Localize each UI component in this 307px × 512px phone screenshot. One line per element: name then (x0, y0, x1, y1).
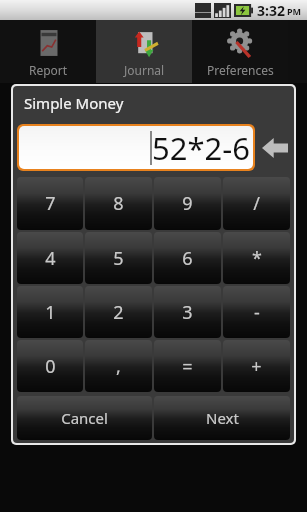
staticText: 9 (182, 191, 193, 216)
button[interactable]: 9 (154, 177, 221, 230)
staticText: Preferences (207, 62, 274, 78)
staticText: 8 (113, 191, 124, 216)
staticText: 7 (45, 191, 56, 216)
staticText: 0 (45, 354, 56, 379)
staticText: Next (206, 408, 239, 428)
staticText: 2 (113, 300, 124, 325)
button[interactable]: Report (0, 20, 96, 83)
button[interactable]: 8 (85, 177, 152, 230)
button[interactable]: 7 (17, 177, 83, 230)
staticText: Journal (124, 62, 165, 78)
button[interactable]: 6 (154, 232, 221, 284)
button[interactable]: Journal (96, 20, 192, 83)
button[interactable]: Preferences (192, 20, 288, 83)
staticText: 1 (45, 300, 56, 325)
staticText: 4 (45, 246, 56, 271)
staticText: + (251, 354, 262, 379)
button[interactable]: Next (154, 396, 290, 440)
staticText: = (182, 354, 193, 379)
button[interactable]: 3 (154, 286, 221, 338)
staticText: - (254, 300, 260, 325)
button[interactable]: Cancel (17, 396, 152, 440)
button[interactable]: / (223, 177, 290, 230)
button[interactable]: * (223, 232, 290, 284)
staticText: PM (287, 5, 302, 17)
staticText: / (253, 191, 260, 216)
staticText: 52*2-6 (152, 127, 250, 169)
staticText: 6 (182, 246, 193, 271)
button[interactable]: 1 (17, 286, 83, 338)
button[interactable]: + (223, 340, 290, 392)
staticText: * (252, 246, 262, 271)
staticText: 3 (182, 300, 193, 325)
button[interactable]: 0 (17, 340, 83, 392)
staticText: Simple Money (24, 93, 124, 113)
button[interactable]: = (154, 340, 221, 392)
button[interactable]: 2 (85, 286, 152, 338)
staticText: Report (29, 62, 68, 78)
button[interactable]: - (223, 286, 290, 338)
staticText: 5 (113, 246, 124, 271)
staticText: Cancel (61, 408, 108, 428)
button[interactable]: Backspace (260, 128, 290, 168)
button[interactable]: 5 (85, 232, 152, 284)
staticText: 3:32 (257, 1, 285, 20)
button[interactable]: 52*2-6 (19, 126, 253, 169)
staticText: , (116, 354, 121, 379)
button[interactable]: , (85, 340, 152, 392)
button[interactable]: 4 (17, 232, 83, 284)
